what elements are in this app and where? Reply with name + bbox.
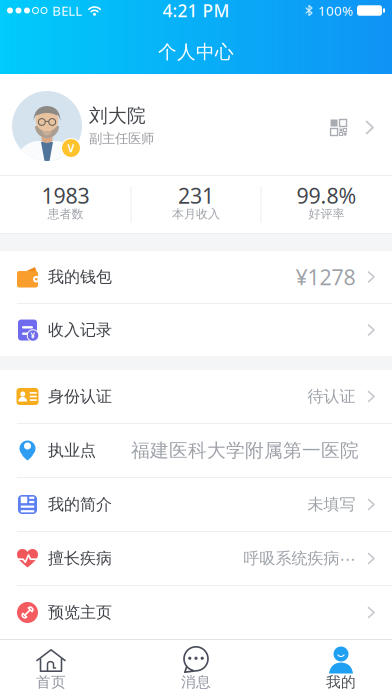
staticText: 福建医科大学附属第一医院 bbox=[131, 439, 359, 462]
staticText: 未填写 bbox=[307, 495, 355, 514]
button[interactable]: 执业点 bbox=[0, 424, 392, 477]
staticText: 我的简介 bbox=[48, 495, 112, 514]
staticText: 执业点 bbox=[48, 441, 96, 460]
staticText: 4:21 PM bbox=[162, 0, 229, 22]
staticText: ¥1278 bbox=[295, 263, 355, 291]
staticText: 身份认证 bbox=[48, 387, 112, 406]
button[interactable]: 消息 bbox=[161, 646, 231, 691]
staticText: V bbox=[67, 141, 74, 155]
staticText: 个人中心 bbox=[158, 40, 234, 63]
staticText: BELL bbox=[52, 2, 82, 19]
button[interactable]: 我的 bbox=[306, 646, 376, 691]
staticText: 99.8% bbox=[296, 181, 356, 210]
button[interactable]: 擅长疾病 bbox=[0, 532, 392, 585]
staticText: 呼吸系统疾病⋯ bbox=[243, 549, 355, 568]
staticText: 1983 bbox=[41, 181, 89, 210]
staticText: 首页 bbox=[36, 673, 66, 691]
button[interactable]: V bbox=[0, 74, 392, 175]
staticText: 收入记录 bbox=[48, 320, 112, 340]
staticText: 预览主页 bbox=[48, 603, 112, 622]
button[interactable]: 首页 bbox=[16, 646, 86, 691]
staticText: 我的 bbox=[326, 673, 356, 691]
staticText: 本月收入 bbox=[172, 207, 220, 221]
staticText: ¥ bbox=[30, 330, 35, 341]
staticText: 待认证 bbox=[307, 387, 355, 406]
staticText: 刘大院 bbox=[89, 104, 146, 127]
staticText: 擅长疾病 bbox=[48, 549, 112, 568]
staticText: 好评率 bbox=[308, 207, 344, 221]
staticText: 231 bbox=[178, 181, 214, 210]
button[interactable]: 我的简介 bbox=[0, 478, 392, 531]
staticText: 100% bbox=[318, 2, 353, 19]
button[interactable]: 预览主页 bbox=[0, 586, 392, 639]
button[interactable]: 我的钱包 bbox=[0, 251, 392, 303]
staticText: 我的钱包 bbox=[48, 267, 112, 287]
button[interactable]: 身份认证 bbox=[0, 370, 392, 423]
staticText: 患者数 bbox=[47, 207, 83, 221]
staticText: 消息 bbox=[181, 673, 211, 691]
button[interactable]: ¥ bbox=[0, 304, 392, 356]
staticText: 副主任医师 bbox=[89, 130, 154, 147]
